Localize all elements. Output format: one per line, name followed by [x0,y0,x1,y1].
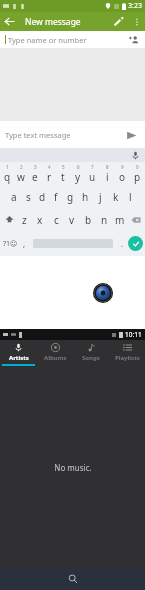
button[interactable]: Songs [73,340,109,366]
staticText: 10:11 [125,330,142,339]
staticText: f [54,190,58,204]
button[interactable]: 5 [56,162,70,185]
staticText: 6 [77,164,80,170]
button[interactable]: More options [128,13,145,30]
staticText: s [26,190,31,204]
staticText: d [39,190,46,204]
button[interactable]: h [78,185,93,208]
staticText: m [115,213,125,227]
staticText: x [37,213,43,227]
staticText: b [85,213,92,227]
staticText: k [113,190,119,204]
staticText: e [32,170,38,184]
other: Speaker [93,283,113,303]
staticText: Type name or number [8,35,87,45]
staticText: a [11,190,17,204]
button[interactable]: d [35,185,49,208]
button[interactable]: Type name or number [5,31,140,48]
staticText: t [61,170,65,184]
button[interactable]: 2 [14,162,28,185]
button[interactable]: Back [0,12,19,31]
button[interactable]: c [48,208,64,231]
staticText: No music. [54,462,92,473]
button[interactable]: Search [65,571,81,587]
button[interactable]: 9 [115,162,130,185]
staticText: i [106,170,109,184]
staticText: j [99,190,102,204]
button[interactable]: s [21,185,35,208]
staticText: w [17,170,25,184]
staticText: l [129,190,132,204]
button[interactable]: 7 [85,162,100,185]
button[interactable]: m [112,208,128,231]
staticText: 9 [121,164,124,170]
button[interactable]: Type text message [5,130,122,140]
staticText: y [75,170,81,184]
staticText: 5 [62,164,65,170]
button[interactable]: Artists [0,340,37,366]
staticText: c [54,213,59,227]
button[interactable]: Enter [128,236,143,251]
staticText: h [82,190,89,204]
staticText: 0 [136,164,139,170]
button[interactable]: z [17,208,32,231]
button[interactable]: Add contact [127,33,140,46]
staticText: , [23,238,26,249]
staticText: r [47,170,52,184]
button[interactable]: Shift [1,208,17,231]
staticText: 2 [20,164,23,170]
button[interactable]: 0 [130,162,145,185]
staticText: ?1☺ [3,239,18,249]
staticText: Artists [9,354,29,362]
button[interactable]: Attach [109,12,128,31]
button[interactable]: j [93,185,108,208]
button[interactable]: Albums [37,340,73,366]
staticText: New message [25,16,81,28]
staticText: 3 [34,164,37,170]
button[interactable]: v [64,208,80,231]
button[interactable]: Send [122,126,140,144]
button[interactable]: 8 [100,162,115,185]
button[interactable]: ?1☺ [2,232,18,255]
button[interactable]: g [63,185,78,208]
button[interactable]: f [49,185,63,208]
staticText: o [119,170,126,184]
staticText: Playlists [115,354,140,362]
button[interactable]: . [116,232,128,255]
staticText: 3:23 [128,1,142,11]
staticText: q [4,170,11,184]
staticText: . [121,238,124,249]
staticText: Albums [44,354,67,362]
button[interactable]: l [123,185,138,208]
staticText: Songs [82,354,100,362]
button[interactable]: k [108,185,123,208]
button[interactable]: Playlists [109,340,145,366]
button[interactable]: x [32,208,48,231]
staticText: n [101,213,108,227]
button[interactable]: 3 [28,162,42,185]
staticText: v [69,213,75,227]
staticText: z [22,213,27,227]
staticText: 4 [48,164,51,170]
staticText: p [134,170,141,184]
button[interactable]: , [18,232,30,255]
staticText: 8 [106,164,109,170]
button[interactable]: n [96,208,112,231]
button[interactable]: Voice input [130,150,140,160]
staticText: g [67,190,74,204]
staticText: 7 [91,164,94,170]
button[interactable]: Backspace [128,208,144,231]
button[interactable]: a [7,185,21,208]
button[interactable]: 4 [42,162,56,185]
button[interactable]: b [80,208,96,231]
button[interactable]: 6 [70,162,85,185]
button[interactable]: 1 [0,162,14,185]
staticText: 1 [6,164,9,170]
staticText: u [89,170,96,184]
